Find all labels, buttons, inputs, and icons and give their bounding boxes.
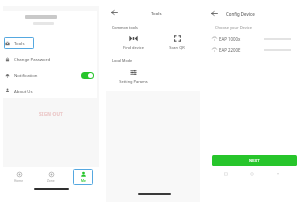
staticText: Tools: [14, 40, 25, 46]
staticText: Setting Params: [119, 79, 148, 84]
button[interactable]: About Us: [3, 83, 97, 98]
staticText: Choose your Device: [215, 25, 253, 30]
staticText: Common tools: [112, 25, 138, 30]
staticText: EAP 2200E: [219, 47, 241, 53]
staticText: Notification: [14, 72, 38, 78]
button[interactable]: Recents: [222, 170, 230, 178]
staticText: Home: [14, 179, 24, 183]
button[interactable]: Scan QR: [155, 34, 199, 50]
staticText: Local Mode: [112, 58, 133, 63]
button[interactable]: Zone: [35, 167, 67, 187]
staticText: Me: [81, 179, 86, 183]
button[interactable]: Back: [108, 6, 121, 19]
staticText: About Us: [14, 88, 33, 94]
staticText: Scan QR: [169, 45, 185, 50]
staticText: SIGN OUT: [39, 111, 63, 117]
button[interactable]: EAP 2200E: [212, 44, 296, 55]
button[interactable]: Setting Params: [111, 68, 155, 84]
button[interactable]: Back: [208, 7, 221, 20]
button[interactable]: Tools: [3, 35, 97, 51]
staticText: Config Device: [226, 11, 255, 17]
button[interactable]: NEXT: [212, 155, 297, 166]
button[interactable]: Back: [274, 170, 282, 178]
button[interactable]: EAP 1000x: [212, 33, 296, 44]
button[interactable]: SIGN OUT: [3, 109, 99, 118]
staticText: Tools: [151, 10, 162, 16]
staticText: Change Password: [14, 56, 51, 62]
button[interactable]: Me: [67, 167, 99, 187]
button[interactable]: Home: [248, 170, 256, 178]
button[interactable]: Find device: [111, 34, 155, 50]
button[interactable]: Change Password: [3, 51, 97, 67]
staticText: Find device: [123, 45, 144, 50]
button[interactable]: Notification: [3, 67, 97, 83]
staticText: NEXT: [249, 158, 260, 163]
button[interactable]: [3, 11, 97, 34]
staticText: EAP 1000x: [219, 36, 241, 42]
button[interactable]: Home: [3, 167, 35, 187]
staticText: Zone: [47, 179, 55, 183]
